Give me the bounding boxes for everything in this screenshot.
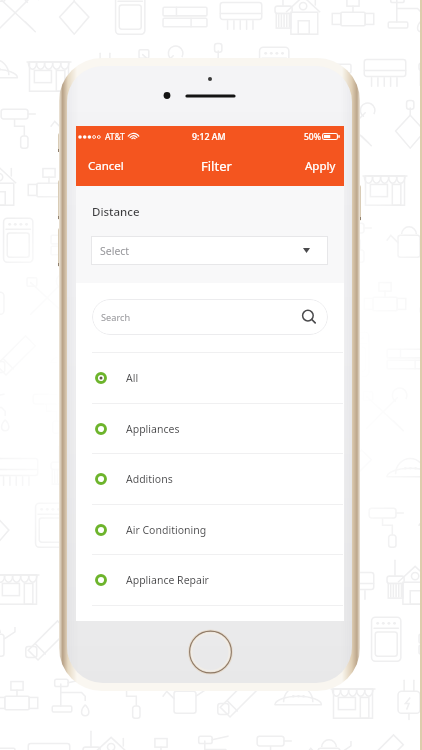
button[interactable]: Appliances [76, 404, 344, 453]
button[interactable]: Select [91, 236, 328, 265]
button[interactable]: Additions [76, 454, 344, 504]
staticText: Distance [92, 204, 140, 220]
staticText: All [126, 371, 139, 385]
button[interactable]: Apply [293, 148, 344, 184]
staticText: Cancel [88, 158, 124, 174]
staticText: 50% [304, 131, 321, 143]
button[interactable]: Appliance Repair [76, 555, 344, 605]
staticText: Air Conditioning [126, 523, 207, 537]
staticText: Additions [126, 472, 173, 486]
staticText: AT&T [105, 131, 125, 143]
button[interactable]: Air Conditioning [76, 505, 344, 554]
staticText: Search [101, 311, 131, 324]
other: Search [302, 309, 317, 325]
staticText: Filter [201, 157, 232, 175]
staticText: Appliance Repair [126, 573, 209, 587]
staticText: Appliances [126, 422, 180, 436]
button[interactable]: Cancel [76, 148, 136, 184]
staticText: Apply [305, 158, 336, 174]
button[interactable]: Search [92, 299, 328, 335]
staticText: 9:12 AM [192, 131, 226, 143]
button[interactable]: All [76, 353, 344, 403]
staticText: Select [100, 244, 130, 258]
